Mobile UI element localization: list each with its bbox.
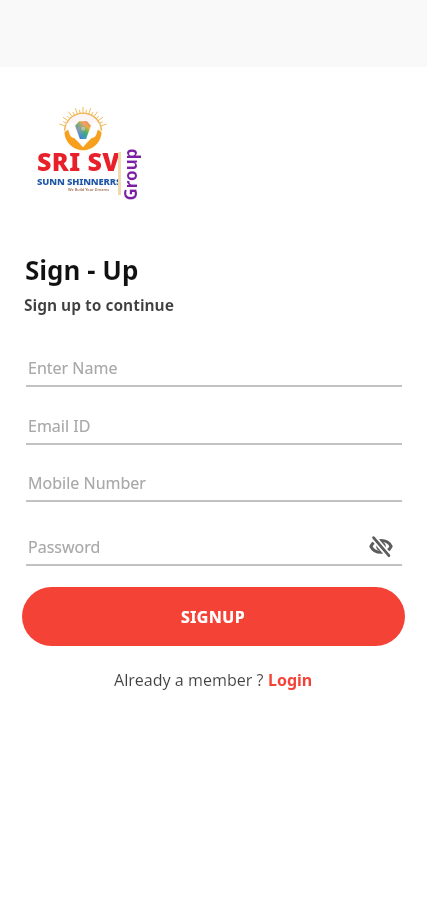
button[interactable]: Toggle password visibility <box>368 533 394 559</box>
staticText: Email ID <box>28 415 91 437</box>
staticText: Password <box>28 536 101 558</box>
staticText: Group <box>118 148 141 200</box>
staticText: Mobile Number <box>28 472 146 494</box>
button[interactable]: Mobile Number <box>26 466 402 502</box>
staticText: Login <box>268 669 313 691</box>
staticText: SRI SV <box>37 144 121 178</box>
button[interactable]: Email ID <box>26 409 402 445</box>
button[interactable]: Password <box>26 530 402 566</box>
staticText: We Build Your Dreams <box>68 187 109 192</box>
staticText: Already a member ? <box>114 669 268 691</box>
button[interactable]: Enter Name <box>26 351 402 387</box>
staticText: Sign - Up <box>25 252 139 287</box>
other: SRI SV Sunn Shinnerrs Group logo <box>37 110 149 202</box>
staticText: Enter Name <box>28 357 118 379</box>
staticText: SIGNUP <box>181 606 246 628</box>
staticText: SUNN SHINNERRS <box>37 175 122 188</box>
staticText: Sign up to continue <box>24 294 174 315</box>
button[interactable]: Login <box>268 669 313 691</box>
button[interactable]: SIGNUP <box>22 587 405 646</box>
